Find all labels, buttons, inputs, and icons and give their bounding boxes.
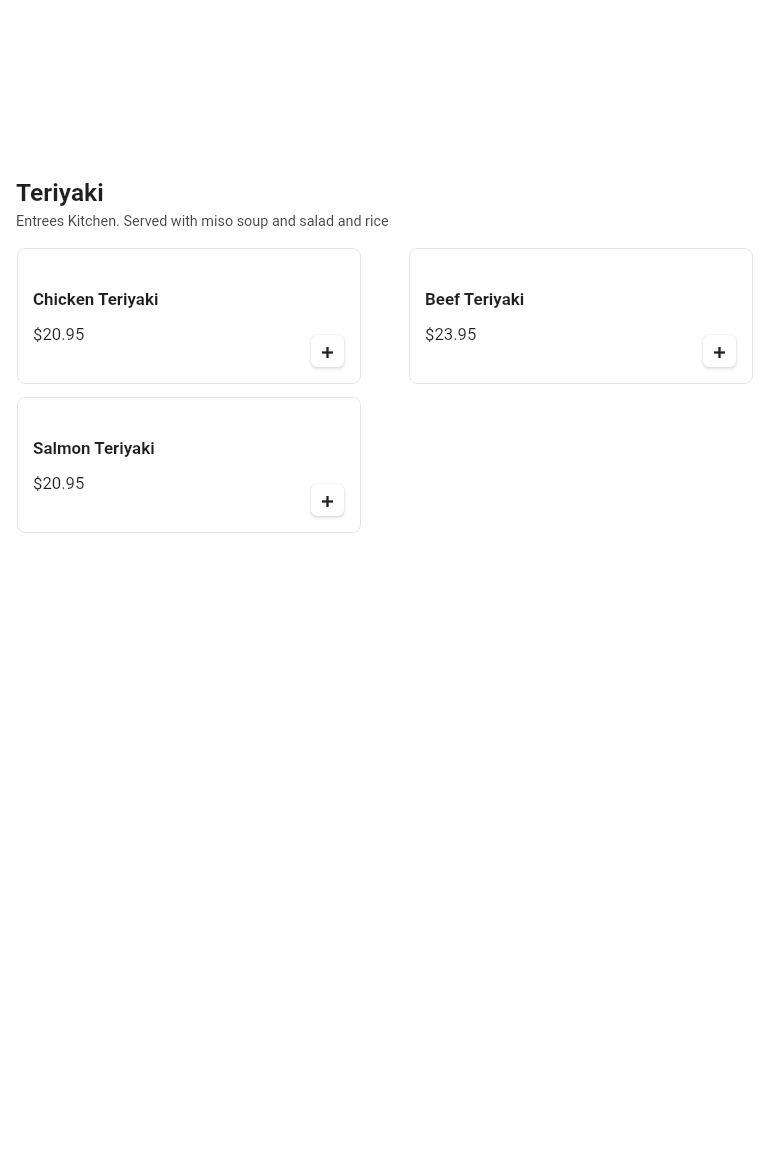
- button[interactable]: Add to order: [703, 335, 736, 367]
- button[interactable]: Beef Teriyaki: [409, 248, 753, 384]
- staticText: Salmon Teriyaki: [33, 438, 155, 458]
- button[interactable]: Chicken Teriyaki: [17, 248, 361, 384]
- button[interactable]: Salmon Teriyaki: [17, 397, 361, 533]
- staticText: Chicken Teriyaki: [33, 289, 159, 309]
- staticText: $20.95: [33, 474, 85, 494]
- button[interactable]: Add to order: [311, 335, 344, 367]
- staticText: $23.95: [425, 325, 477, 345]
- staticText: $20.95: [33, 325, 85, 345]
- staticText: Beef Teriyaki: [425, 289, 525, 309]
- staticText: Teriyaki: [16, 178, 104, 207]
- staticText: Entrees Kitchen. Served with miso soup a…: [16, 213, 389, 230]
- button[interactable]: Add to order: [311, 484, 344, 516]
